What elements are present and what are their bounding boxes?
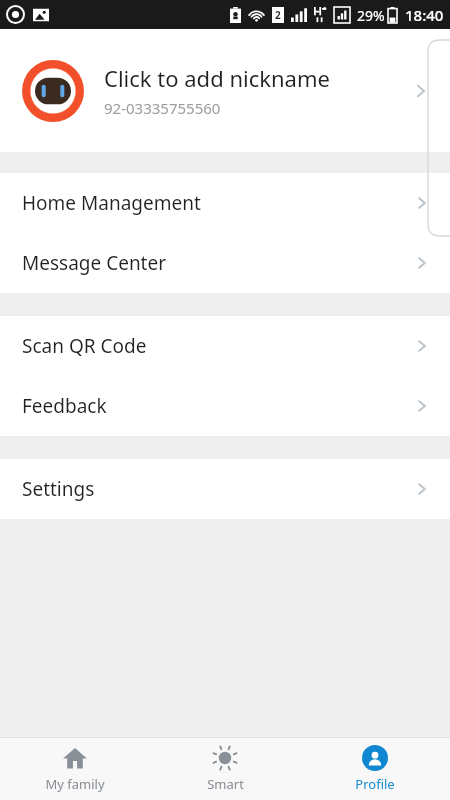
other: My family	[62, 745, 88, 771]
button[interactable]: Message Center	[0, 233, 450, 293]
staticText: 92-03335755560	[104, 98, 221, 118]
button[interactable]: My family	[0, 738, 150, 800]
staticText: 18:40	[405, 5, 444, 25]
staticText: Scan QR Code	[22, 333, 147, 359]
button[interactable]: Settings	[0, 459, 450, 519]
other: Smart	[212, 745, 238, 771]
button[interactable]: Click to add nickname	[0, 29, 450, 152]
button[interactable]: Smart	[150, 738, 300, 800]
staticText: 2	[275, 8, 281, 22]
button[interactable]: Scan QR Code	[0, 316, 450, 376]
staticText: Profile	[355, 775, 395, 793]
staticText: Feedback	[22, 393, 107, 419]
staticText: Settings	[22, 476, 95, 502]
button[interactable]: Profile	[300, 738, 450, 800]
staticText: My family	[45, 775, 105, 793]
button[interactable]: Feedback	[0, 376, 450, 436]
staticText: Message Center	[22, 250, 167, 276]
button[interactable]: Home Management	[0, 173, 450, 233]
staticText: Smart	[207, 775, 244, 793]
other: Profile	[362, 745, 388, 771]
staticText: Click to add nickname	[104, 63, 330, 93]
staticText: 29%	[357, 6, 385, 25]
staticText: Home Management	[22, 190, 201, 216]
